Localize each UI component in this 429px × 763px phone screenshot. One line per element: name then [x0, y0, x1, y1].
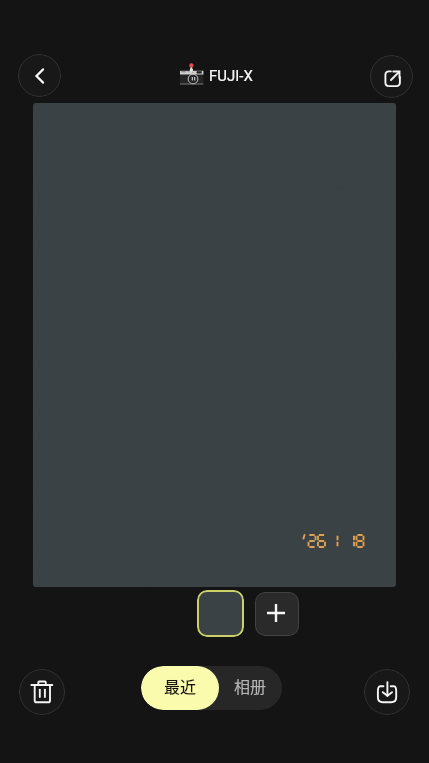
staticText: FUJI-X — [209, 67, 253, 85]
button[interactable]: 相册 — [219, 666, 282, 710]
button[interactable]: Back — [18, 54, 61, 97]
button[interactable]: Share — [370, 55, 413, 98]
button[interactable]: Delete — [19, 669, 65, 715]
staticText: 相册 — [234, 674, 267, 697]
button[interactable]: Selected photo — [197, 590, 244, 637]
staticText: 最近 — [164, 674, 197, 697]
button[interactable]: Download — [364, 669, 410, 715]
button[interactable]: 最近 — [141, 666, 219, 710]
button[interactable]: Add photo — [255, 592, 299, 636]
